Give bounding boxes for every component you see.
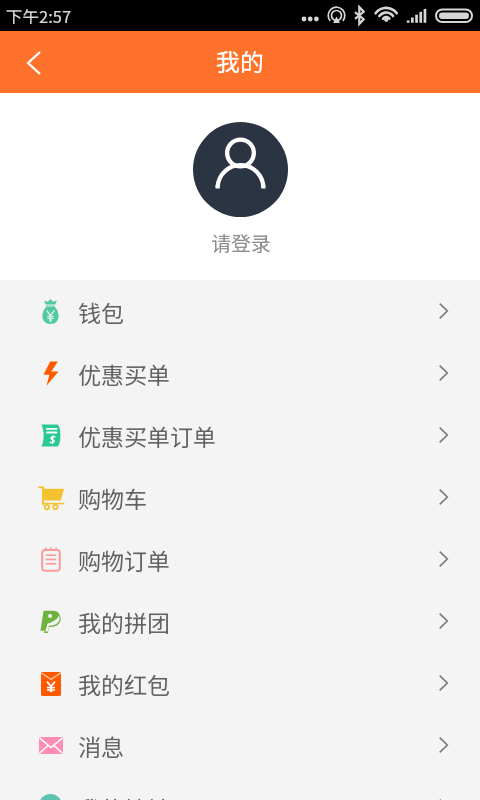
staticText: 我的红包 [78,667,170,700]
staticText: 我的地址 [78,791,170,800]
button[interactable]: 钱包 [0,280,480,342]
staticText: 消息 [78,729,124,762]
staticText: 购物订单 [78,543,170,576]
staticText: 优惠买单订单 [78,419,216,452]
button[interactable]: Avatar, please log in [193,122,288,217]
staticText: 请登录 [211,228,271,257]
button[interactable]: 购物车 [0,466,480,528]
button[interactable]: 优惠买单 [0,342,480,404]
staticText: 下午2:57 [6,4,72,28]
button[interactable]: 我的拼团 [0,590,480,652]
button[interactable]: 消息 [0,714,480,776]
staticText: 购物车 [78,481,147,514]
button[interactable]: 优惠买单订单 [0,404,480,466]
staticText: 我的拼团 [78,605,170,638]
button[interactable]: Back [0,31,62,93]
staticText: 我的 [216,43,264,78]
staticText: 钱包 [78,295,124,328]
staticText: 优惠买单 [78,357,170,390]
button[interactable]: 我的地址 [0,776,480,800]
button[interactable]: 我的红包 [0,652,480,714]
button[interactable]: 购物订单 [0,528,480,590]
